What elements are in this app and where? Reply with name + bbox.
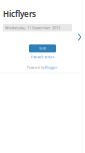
- staticText: Hicflyers: [3, 9, 36, 19]
- staticText: Powered by: [27, 66, 44, 69]
- button[interactable]: Home: [29, 44, 56, 52]
- button[interactable]: Older posts: [78, 33, 81, 41]
- button[interactable]: View web version: [30, 55, 54, 59]
- button[interactable]: Blogger.: [45, 66, 58, 69]
- staticText: View web version: [30, 55, 54, 59]
- staticText: Home: [38, 47, 46, 50]
- staticText: Blogger.: [45, 66, 58, 69]
- staticText: Wednesday, 11 September 2013: [5, 25, 60, 30]
